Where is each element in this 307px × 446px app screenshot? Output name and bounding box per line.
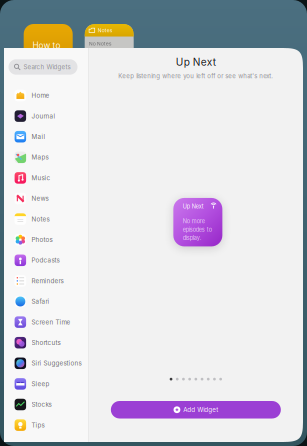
staticText: Home [32, 92, 50, 99]
staticText: Sleep [32, 380, 50, 388]
staticText: display. [183, 235, 202, 241]
button[interactable]: Maps [0, 147, 84, 168]
staticText: Up Next [183, 203, 204, 210]
button[interactable]: Photos [0, 229, 84, 250]
staticText: Keep listening where you left off or see… [118, 72, 273, 80]
staticText: Tips [32, 421, 45, 429]
button[interactable]: News [0, 188, 84, 209]
staticText: No Notes [89, 40, 112, 47]
staticText: Safari [32, 298, 50, 305]
staticText: Notes [97, 27, 112, 33]
staticText: Up Next [176, 56, 216, 68]
button[interactable]: Reminders [0, 271, 84, 291]
staticText: episodes to [183, 226, 212, 233]
button[interactable]: Stocks [0, 394, 84, 415]
button[interactable]: Podcasts [0, 250, 84, 271]
staticText: Notes [32, 215, 50, 223]
button[interactable]: Safari [0, 291, 84, 312]
staticText: Screen Time [32, 318, 71, 326]
button[interactable]: Tips [0, 415, 84, 435]
staticText: Podcasts [32, 256, 60, 264]
staticText: Maps [32, 153, 49, 161]
staticText: News [32, 195, 49, 202]
button[interactable]: Shortcuts [0, 332, 84, 353]
button[interactable]: Notes [0, 209, 84, 229]
staticText: Reminders [32, 277, 64, 285]
button[interactable]: Screen Time [0, 312, 84, 332]
button[interactable]: Search Widgets [8, 59, 77, 75]
staticText: Stocks [32, 401, 52, 408]
staticText: Add Widget [183, 406, 218, 413]
button[interactable]: Music [0, 168, 84, 188]
staticText: Shortcuts [32, 339, 61, 346]
staticText: No more [183, 218, 205, 225]
staticText: Search Widgets [24, 63, 71, 71]
button[interactable]: Journal [0, 106, 84, 126]
staticText: Music [32, 174, 51, 182]
staticText: Mail [32, 133, 46, 140]
button[interactable]: Siri Suggestions [0, 353, 93, 374]
staticText: Siri Suggestions [32, 359, 82, 367]
staticText: How to [32, 40, 60, 50]
button[interactable]: Sleep [0, 374, 84, 394]
button[interactable]: Mail [0, 126, 84, 147]
staticText: Photos [32, 236, 53, 243]
button[interactable]: Add Widget [111, 401, 281, 418]
button[interactable]: Home [0, 85, 84, 106]
staticText: Journal [32, 112, 56, 120]
